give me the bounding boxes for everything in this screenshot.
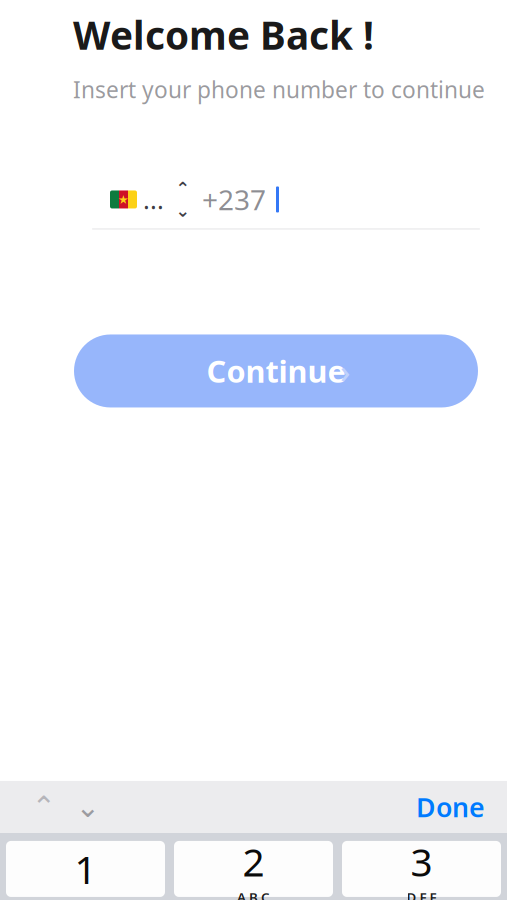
button[interactable]: ★ [92,182,480,229]
button[interactable]: 2 [174,841,333,897]
button[interactable]: Continue [74,334,478,407]
button[interactable]: 1 [6,841,165,897]
button[interactable]: Next field [66,785,110,829]
staticText: 1 [74,843,96,895]
staticText: Insert your phone number to continue [73,74,485,104]
staticText: ⌄ [75,790,100,824]
button[interactable]: 3 [342,841,501,897]
staticText: +237 [202,181,266,218]
button[interactable]: Previous field [22,785,66,829]
staticText: ★ [118,193,129,206]
staticText: ⌄ [175,201,190,221]
staticText: A B C [237,888,270,900]
staticText: ⌃ [175,178,190,198]
staticText: Welcome Back ! [73,9,374,60]
staticText: 2 [242,836,264,887]
staticText: 3 [410,836,432,887]
staticText: › [340,350,350,392]
staticText: D E F [406,888,436,900]
staticText: ⌃ [31,790,56,824]
staticText: Done [416,789,485,825]
staticText: Continue [206,351,345,391]
button[interactable]: Done [406,785,495,829]
staticText: ... [143,183,164,216]
